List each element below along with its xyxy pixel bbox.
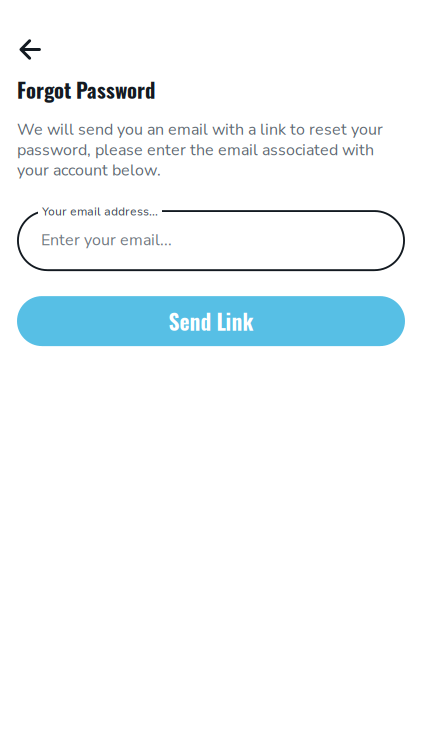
button[interactable]: Back: [0, 0, 56, 74]
staticText: We will send you an email with a link to…: [17, 119, 383, 181]
staticText: Your email address...: [42, 204, 158, 220]
staticText: Send Link: [168, 305, 253, 337]
staticText: Enter your email...: [41, 229, 172, 251]
button[interactable]: Enter your email...: [17, 199, 405, 270]
staticText: Forgot Password: [17, 74, 155, 105]
button[interactable]: Send Link: [17, 296, 405, 346]
